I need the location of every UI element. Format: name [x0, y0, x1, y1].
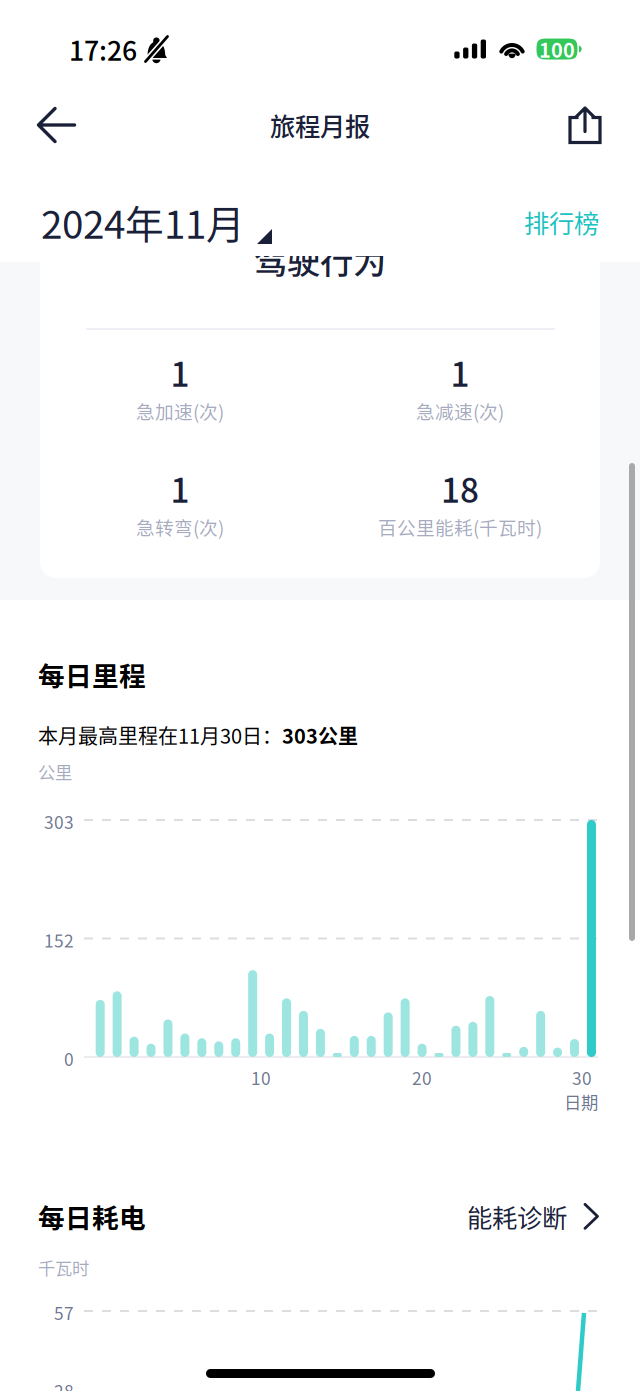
- staticText: 旅程月报: [270, 107, 370, 143]
- staticText: 17:26: [69, 30, 137, 68]
- staticText: 能耗诊断: [467, 1198, 567, 1235]
- staticText: 千瓦时: [38, 1255, 89, 1280]
- button[interactable]: 返回: [22, 90, 91, 160]
- staticText: 152: [44, 927, 74, 953]
- staticText: 排行榜: [524, 204, 599, 240]
- staticText: 1: [450, 348, 469, 396]
- staticText: 20: [412, 1065, 432, 1090]
- staticText: 公里: [38, 759, 72, 784]
- staticText: 本月最高里程在11月30日：: [38, 721, 282, 750]
- staticText: 0: [64, 1046, 74, 1071]
- staticText: 18: [441, 464, 479, 512]
- staticText: 303公里: [282, 721, 358, 750]
- button[interactable]: 分享: [552, 89, 618, 160]
- staticText: 28: [54, 1378, 74, 1391]
- staticText: 303: [44, 809, 74, 834]
- staticText: 100: [539, 34, 575, 63]
- staticText: 驾驶行为: [254, 235, 386, 283]
- staticText: 2024年11月: [41, 194, 245, 250]
- staticText: 1: [170, 464, 189, 512]
- staticText: 57: [54, 1300, 74, 1325]
- staticText: 10: [251, 1065, 271, 1090]
- button[interactable]: 能耗诊断: [443, 1190, 600, 1243]
- staticText: 每日耗电: [38, 1197, 146, 1236]
- button[interactable]: 排行榜: [500, 192, 599, 252]
- staticText: 日期: [564, 1089, 598, 1114]
- button[interactable]: 2024年11月: [41, 188, 272, 256]
- staticText: 30: [572, 1065, 592, 1090]
- staticText: 百公里能耗(千瓦时): [378, 513, 542, 540]
- staticText: 急加速(次): [136, 397, 224, 424]
- staticText: 每日里程: [38, 655, 146, 694]
- staticText: 急转弯(次): [136, 513, 224, 540]
- staticText: 急减速(次): [416, 397, 504, 424]
- staticText: 1: [170, 348, 189, 396]
